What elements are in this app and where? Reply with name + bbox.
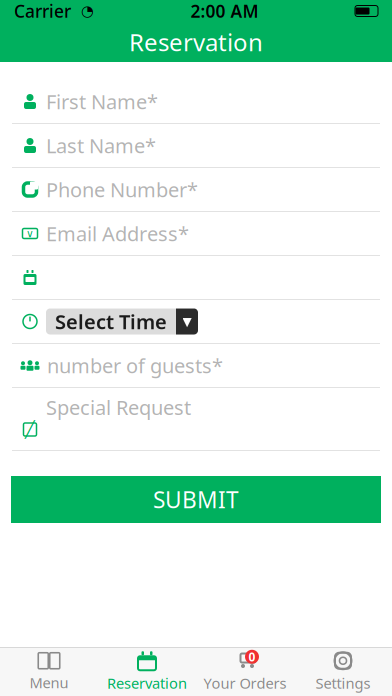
staticText: ∨ [26,227,34,239]
button[interactable]: 0 [196,648,294,696]
button[interactable]: Select Date [0,256,392,300]
staticText: Settings [315,673,370,693]
staticText: Your Orders [203,673,286,693]
button[interactable]: number of guests* [0,344,392,388]
staticText: Phone Number* [46,176,198,203]
button[interactable]: Last Name* [0,124,392,168]
staticText: Last Name* [46,132,156,159]
staticText: SUBMIT [153,484,239,514]
button[interactable]: First Name* [0,80,392,124]
button[interactable]: Reservation [98,648,196,696]
button[interactable]: SUBMIT [11,476,381,523]
staticText: 2:00 AM [190,0,258,22]
button[interactable]: ╱ [0,388,392,451]
button[interactable]: Menu [0,648,98,696]
staticText: Select Time [55,308,167,335]
staticText: Special Request [46,394,191,421]
staticText: Email Address* [46,220,189,247]
staticText: Carrier [14,0,71,22]
button[interactable]: Settings [294,648,392,696]
staticText: ▼ [182,315,191,328]
staticText: Menu [29,673,68,692]
staticText: ╱ [25,420,35,439]
staticText: Reservation [107,673,187,693]
staticText: ◔ [71,3,94,19]
button[interactable]: Select Time [0,300,392,344]
staticText: 0 [248,649,255,665]
staticText: Reservation [129,26,263,58]
staticText: number of guests* [47,352,223,379]
button[interactable]: ∨ [0,212,392,256]
staticText: First Name* [46,88,158,115]
button[interactable]: Phone Number* [0,168,392,212]
